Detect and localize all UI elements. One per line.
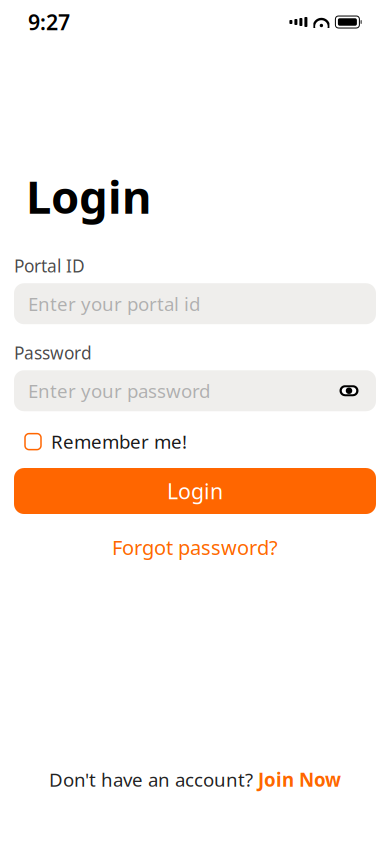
button[interactable]: Don't have an account? (39, 761, 351, 798)
staticText: Enter your password (28, 378, 210, 403)
staticText: Remember me! (51, 429, 187, 454)
staticText: Login (167, 477, 223, 505)
staticText: Don't have an account? (49, 767, 253, 792)
button[interactable]: Show password (336, 378, 362, 404)
staticText: Password (14, 341, 92, 364)
staticText: 9:27 (28, 8, 70, 36)
staticText: Portal ID (14, 254, 85, 277)
button[interactable]: Forgot password? (104, 530, 286, 565)
staticText: Forgot password? (112, 534, 278, 561)
staticText: Join Now (258, 767, 341, 792)
button[interactable]: Remember me! (25, 423, 187, 460)
staticText: Enter your portal id (28, 291, 200, 316)
staticText: Login (26, 166, 151, 226)
button[interactable]: Login (14, 468, 376, 514)
